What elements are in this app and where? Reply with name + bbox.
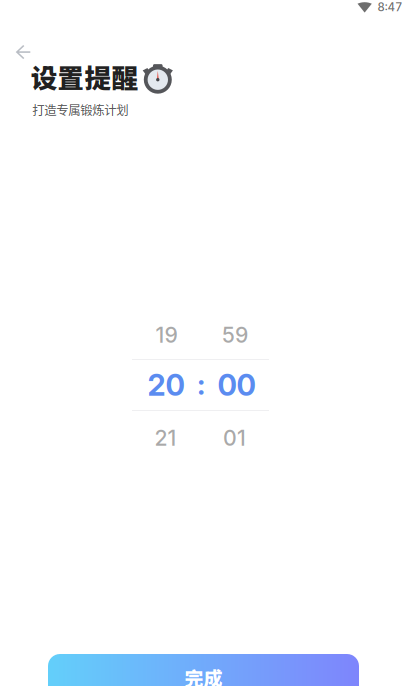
button[interactable]: 20 xyxy=(134,363,198,407)
staticText: 完成 xyxy=(184,663,222,686)
staticText: 59 xyxy=(222,322,248,348)
staticText: 20 xyxy=(147,367,184,403)
staticText: 19 xyxy=(155,322,177,348)
staticText: 设置提醒 xyxy=(31,57,139,96)
button[interactable]: 01 xyxy=(202,416,266,460)
staticText: 21 xyxy=(154,425,176,451)
button[interactable]: 00 xyxy=(204,363,268,407)
staticText: 8:47 xyxy=(377,0,402,14)
button[interactable]: 21 xyxy=(133,416,197,460)
staticText: 01 xyxy=(223,425,246,451)
staticText: 打造专属锻炼计划 xyxy=(32,100,128,118)
button[interactable]: 19 xyxy=(134,313,198,357)
button[interactable]: 完成 xyxy=(48,654,359,686)
staticText: : xyxy=(197,368,205,401)
button[interactable]: Back xyxy=(0,33,46,71)
staticText: 00 xyxy=(217,367,255,403)
button[interactable]: 59 xyxy=(203,313,267,357)
